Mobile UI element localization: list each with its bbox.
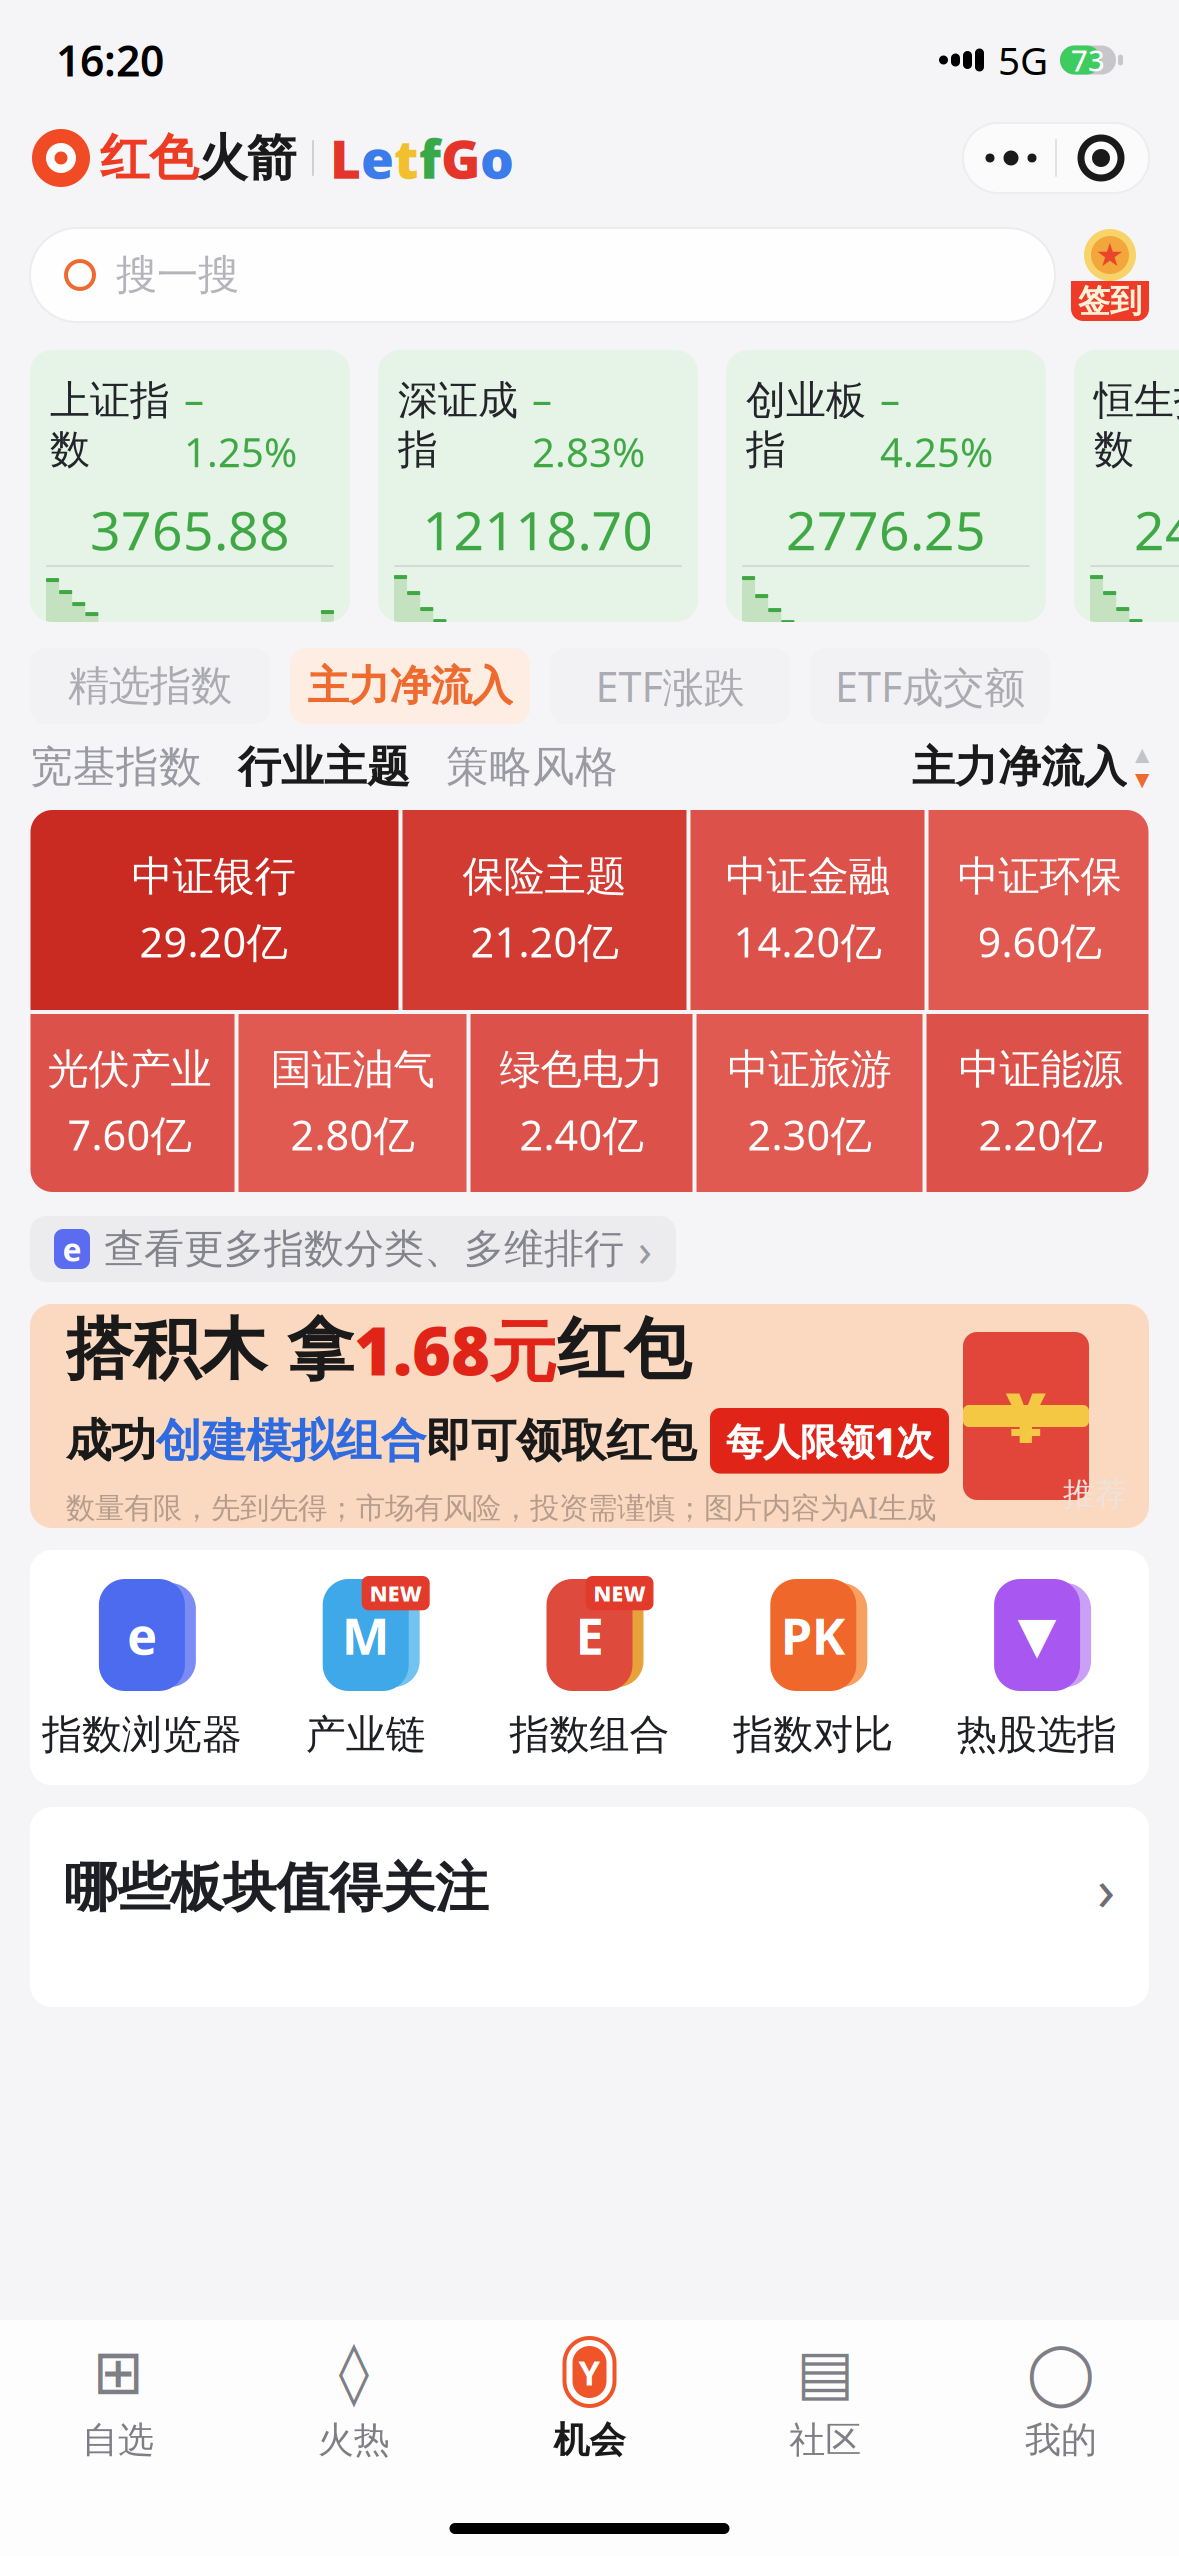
staticText: 5G: [998, 34, 1048, 86]
staticText: 主力净流入: [307, 661, 512, 711]
staticText: e: [62, 1228, 81, 1270]
button[interactable]: 搭积木 拿: [30, 1304, 1149, 1528]
staticText: ›: [638, 1219, 652, 1279]
staticText: 恒生指数: [1094, 376, 1179, 474]
staticText: 策略风格: [446, 741, 618, 793]
staticText: 搜一搜: [116, 250, 239, 300]
staticText: E: [575, 1601, 603, 1669]
staticText: e: [361, 123, 394, 193]
button[interactable]: 主力净流入: [912, 741, 1149, 793]
staticText: 搭积木 拿: [66, 1309, 354, 1391]
staticText: 机会: [553, 2418, 625, 2462]
button[interactable]: 精选指数: [30, 648, 270, 724]
button[interactable]: More: [967, 123, 1055, 193]
button[interactable]: ◯: [943, 2336, 1179, 2462]
button[interactable]: ETF成交额: [810, 648, 1050, 724]
staticText: 中证金融: [725, 851, 889, 902]
staticText: 推荐: [1063, 1475, 1127, 1514]
button[interactable]: 光伏产业: [24, 1014, 234, 1192]
button[interactable]: 中证银行: [28, 810, 398, 1010]
button[interactable]: 中证环保: [928, 810, 1150, 1010]
staticText: ▼: [1135, 769, 1149, 790]
button[interactable]: 宽基指数: [30, 741, 202, 793]
staticText: 2.40亿: [519, 1107, 643, 1162]
staticText: 成功: [66, 1413, 156, 1469]
staticText: ★: [1095, 237, 1124, 273]
staticText: –1.25%: [184, 372, 297, 478]
button[interactable]: 中证金融: [690, 810, 924, 1010]
button[interactable]: 绿色电力: [470, 1014, 692, 1192]
staticText: ◊: [339, 2337, 369, 2407]
staticText: 7.60亿: [67, 1107, 191, 1162]
staticText: L: [330, 123, 361, 193]
button[interactable]: 国证油气: [238, 1014, 466, 1192]
button[interactable]: ▼: [957, 1576, 1117, 1759]
button[interactable]: M: [302, 1576, 430, 1759]
staticText: 9.60亿: [977, 914, 1101, 969]
staticText: 火箭: [198, 128, 296, 188]
staticText: 查看更多指数分类、多维排行: [104, 1224, 624, 1273]
staticText: NEW: [370, 1579, 422, 1607]
button[interactable]: 恒生指数: [1074, 350, 1179, 622]
staticText: 热股选指: [957, 1710, 1117, 1759]
staticText: 指数对比: [733, 1710, 893, 1759]
staticText: –4.25%: [880, 372, 993, 478]
button[interactable]: 深证成指: [378, 350, 698, 622]
button[interactable]: e: [42, 1576, 242, 1759]
staticText: 我的: [1025, 2418, 1097, 2462]
button[interactable]: 中证能源: [926, 1014, 1154, 1192]
staticText: 精选指数: [68, 661, 232, 711]
staticText: 12118.70: [422, 494, 653, 565]
staticText: ¥: [1005, 1370, 1046, 1462]
staticText: 创业板指: [746, 376, 866, 474]
button[interactable]: 保险主题: [402, 810, 686, 1010]
staticText: 产业链: [306, 1710, 426, 1759]
button[interactable]: Close: [1057, 123, 1145, 193]
staticText: 中证环保: [957, 851, 1121, 902]
button[interactable]: PK: [733, 1576, 893, 1759]
staticText: 绿色电力: [499, 1044, 663, 1095]
staticText: 火热: [318, 2418, 390, 2462]
button[interactable]: 中证旅游: [696, 1014, 922, 1192]
button[interactable]: E: [509, 1576, 669, 1759]
staticText: 哪些板块值得关注: [64, 1855, 488, 1921]
button[interactable]: e: [30, 1216, 676, 1282]
button[interactable]: 策略风格: [410, 741, 618, 793]
staticText: 24800.0: [1134, 494, 1179, 565]
staticText: 自选: [82, 2418, 154, 2462]
staticText: 2.80亿: [290, 1107, 414, 1162]
staticText: G: [441, 123, 480, 193]
button[interactable]: 哪些板块值得关注: [30, 1807, 1149, 2007]
staticText: 光伏产业: [47, 1044, 211, 1095]
staticText: 3765.88: [90, 494, 290, 565]
staticText: ETF涨跌: [595, 658, 744, 713]
button[interactable]: 上证指数: [30, 350, 350, 622]
staticText: ▼: [1018, 1606, 1057, 1664]
staticText: 中证银行: [131, 851, 295, 902]
staticText: ▤: [796, 2337, 854, 2407]
button[interactable]: ◊: [236, 2336, 472, 2462]
staticText: ⊞: [92, 2337, 143, 2407]
button[interactable]: 主力净流入: [290, 648, 530, 724]
button[interactable]: ETF涨跌: [550, 648, 790, 724]
button[interactable]: 创业板指: [726, 350, 1046, 622]
staticText: 创建模拟组合: [156, 1413, 426, 1469]
staticText: Y: [578, 2349, 600, 2395]
staticText: 73: [1071, 40, 1105, 79]
staticText: 主力净流入: [912, 741, 1127, 793]
staticText: 2.20亿: [978, 1107, 1102, 1162]
staticText: 指数浏览器: [42, 1710, 242, 1759]
staticText: 签到: [1078, 281, 1142, 321]
staticText: 国证油气: [270, 1044, 434, 1095]
button[interactable]: 搜一搜: [30, 228, 1055, 322]
button[interactable]: ▤: [707, 2336, 943, 2462]
staticText: 深证成指: [398, 376, 518, 474]
staticText: 指数组合: [509, 1710, 669, 1759]
button[interactable]: ⊞: [0, 2336, 236, 2462]
button[interactable]: Y: [472, 2336, 707, 2462]
staticText: 29.20亿: [139, 914, 287, 969]
button[interactable]: 签到: [1071, 229, 1149, 321]
staticText: ▲: [1135, 744, 1149, 765]
button[interactable]: 行业主题: [202, 741, 410, 793]
staticText: ETF成交额: [835, 658, 1025, 713]
